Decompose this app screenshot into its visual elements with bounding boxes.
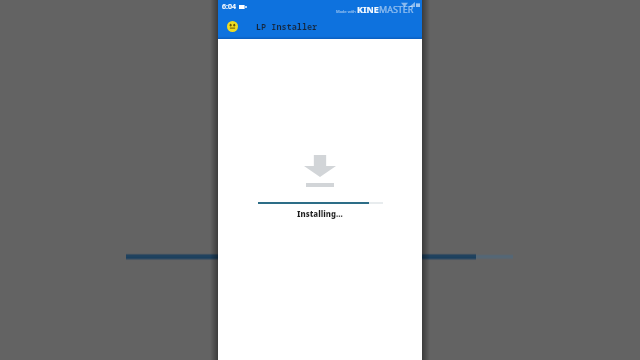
staticText: Installing... [297, 209, 343, 220]
button[interactable]: Download [218, 155, 422, 187]
button[interactable]: LP Installer app icon [218, 14, 422, 39]
staticText: MASTER [379, 3, 414, 15]
staticText: LP Installer [256, 21, 318, 33]
staticText: Made with [336, 9, 357, 14]
staticText: KINE [357, 3, 379, 15]
button[interactable]: LP Installer app icon [227, 21, 238, 32]
staticText: 6:04 [222, 2, 236, 12]
